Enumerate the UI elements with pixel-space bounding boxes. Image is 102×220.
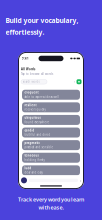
button[interactable]: pragmatic: [22, 140, 80, 150]
staticText: All Words: [21, 67, 35, 71]
staticText: eloquent: [24, 91, 38, 94]
staticText: clear and easy: [24, 171, 42, 174]
staticText: Tap to browse all words: [21, 72, 53, 76]
button[interactable]: eloquent: [22, 90, 80, 100]
button[interactable]: resilient: [22, 102, 80, 112]
staticText: effortlessly.: [5, 28, 44, 37]
staticText: tenacious: [24, 154, 38, 157]
staticText: resilient: [24, 103, 36, 107]
button[interactable]: ubiquitous: [22, 115, 80, 125]
staticText: holding firmly: [24, 158, 44, 162]
button[interactable]: lucid: [22, 165, 80, 175]
staticText: lucid: [24, 166, 31, 170]
staticText: recovers quickly: [24, 108, 45, 111]
staticText: ›: [80, 178, 81, 183]
button[interactable]: Open: [80, 178, 81, 183]
button[interactable]: Add word: [76, 79, 81, 84]
staticText: ubiquitous: [24, 116, 40, 119]
staticText: candid: [24, 129, 34, 132]
staticText: 9:41: [22, 57, 29, 60]
staticText: able to express ideas well: [24, 95, 59, 99]
button[interactable]: Search words: [21, 79, 47, 84]
staticText: found everywhere: [24, 120, 49, 124]
button[interactable]: tenacious: [22, 153, 80, 163]
staticText: Build your vocabulary,: [5, 16, 78, 25]
staticText: practical and sensible: [24, 145, 53, 149]
staticText: Track every word you learn: [18, 196, 84, 203]
staticText: Search words: [23, 80, 40, 83]
staticText: truthful and direct: [24, 133, 50, 136]
staticText: pragmatic: [24, 141, 39, 145]
button[interactable]: Profile: [21, 177, 27, 183]
staticText: with ease.: [38, 204, 63, 211]
button[interactable]: candid: [22, 127, 80, 137]
staticText: ›: [74, 80, 75, 83]
